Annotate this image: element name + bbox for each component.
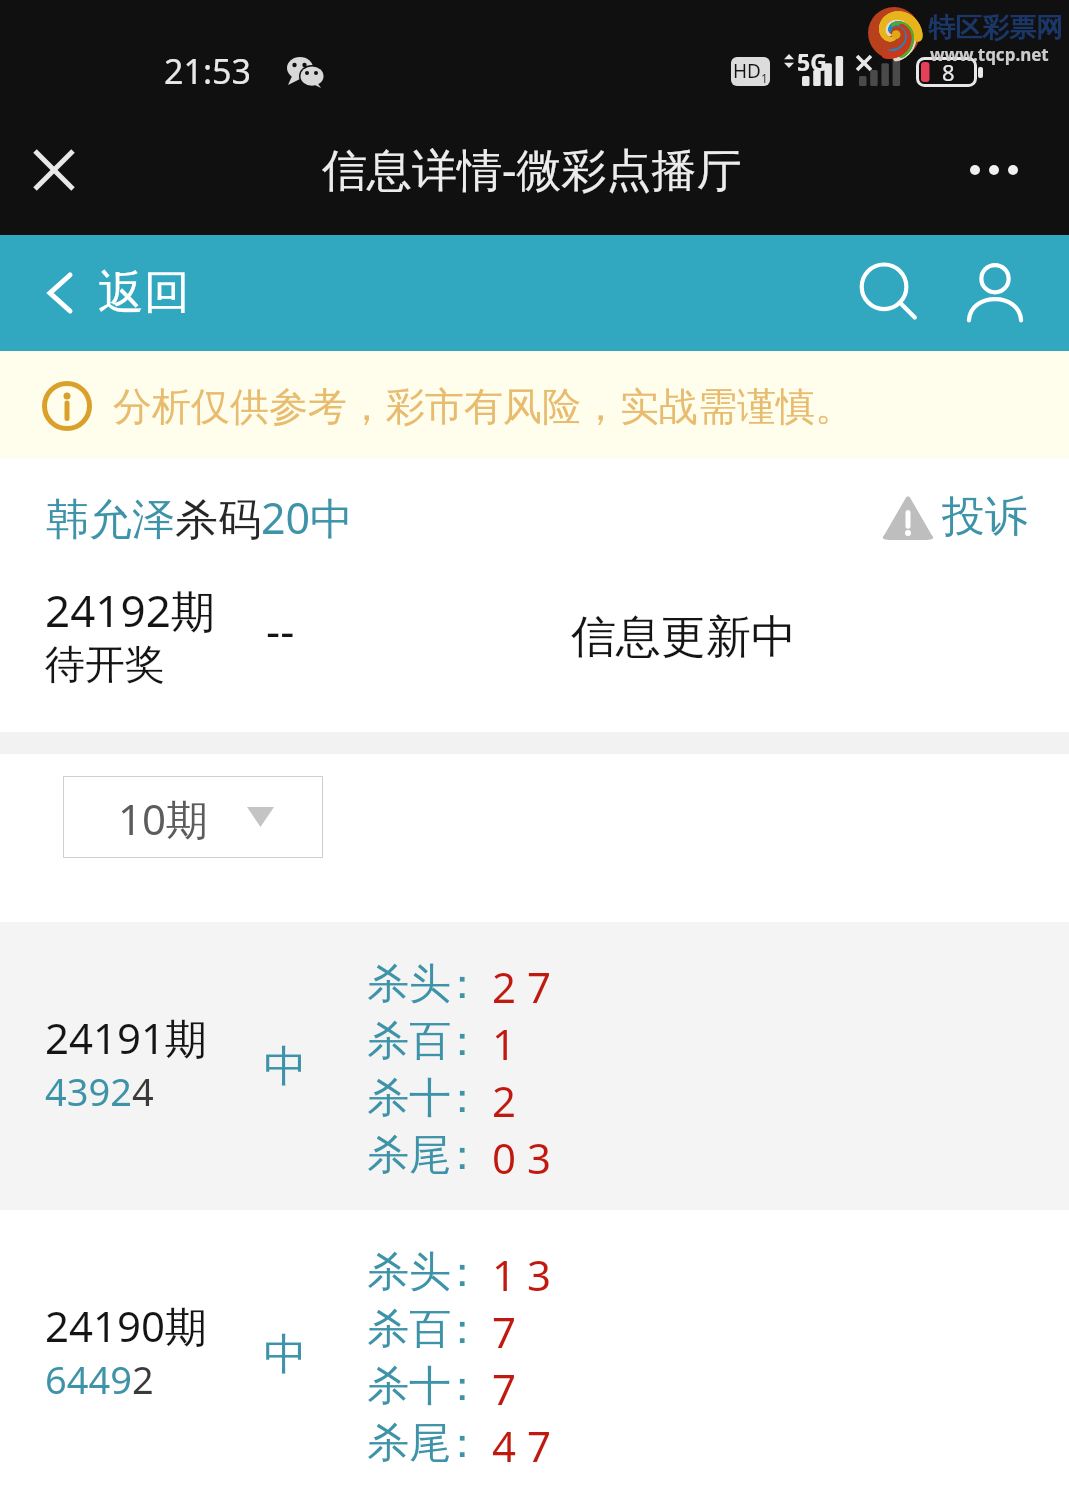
staticText: 投诉 [942, 490, 1028, 544]
staticText: 21:53 [164, 48, 251, 94]
staticText: 10期 [118, 790, 209, 847]
staticText: 43924 [45, 1065, 154, 1117]
staticText: 杀头 [367, 958, 451, 1011]
button[interactable]: Close [10, 126, 98, 214]
button[interactable]: More options [950, 126, 1038, 214]
staticText: 信息更新中 [571, 609, 796, 666]
button[interactable]: 返回 [48, 248, 190, 338]
staticText: 5G [797, 46, 827, 77]
staticText: 8 [942, 57, 955, 87]
staticText: 2 [492, 1072, 517, 1129]
button[interactable]: 投诉 [881, 482, 1028, 552]
staticText: ： [441, 958, 483, 1011]
staticText: 杀十 [367, 1072, 451, 1125]
staticText: 7 [492, 1360, 517, 1417]
staticText: ： [441, 1072, 483, 1125]
staticText: 分析仅供参考，彩市有风险，实战需谨慎。 [113, 382, 854, 431]
button[interactable]: 10期 [63, 776, 323, 858]
staticText: 中 [264, 1040, 307, 1094]
staticText: 杀尾 [367, 1129, 451, 1182]
staticText: ： [441, 1417, 483, 1470]
staticText: 中 [264, 1328, 307, 1382]
button[interactable]: 24190期 [0, 1210, 1069, 1500]
staticText: 7 [492, 1303, 517, 1360]
staticText: www.tqcp.net [930, 43, 1049, 66]
staticText: ： [441, 1015, 483, 1068]
staticText: 4 7 [492, 1417, 551, 1474]
button[interactable]: 24191期 [0, 922, 1069, 1210]
staticText: 2 7 [492, 958, 551, 1015]
staticText: 1 [492, 1015, 517, 1072]
staticText: ： [441, 1129, 483, 1182]
staticText: 杀头 [367, 1246, 451, 1299]
staticText: -- [266, 600, 295, 660]
staticText: ： [441, 1246, 483, 1299]
staticText: 特区彩票网 [928, 11, 1063, 45]
staticText: 杀百 [367, 1303, 451, 1356]
staticText: 24191期 [45, 1009, 208, 1066]
staticText: HD1 [733, 58, 768, 86]
staticText: 1 3 [492, 1246, 551, 1303]
staticText: 64492 [45, 1353, 154, 1405]
staticText: 返回 [98, 264, 190, 322]
staticText: ： [441, 1303, 483, 1356]
staticText: 杀十 [367, 1360, 451, 1413]
staticText: ： [441, 1360, 483, 1413]
staticText: 杀尾 [367, 1417, 451, 1470]
staticText: 韩允泽杀码20中 [46, 488, 354, 547]
staticText: 杀百 [367, 1015, 451, 1068]
staticText: 待开奖 [45, 639, 165, 689]
staticText: 24192期 [45, 580, 215, 640]
button[interactable]: Search [839, 243, 939, 343]
staticText: 0 3 [492, 1129, 551, 1186]
button[interactable]: Profile [945, 242, 1045, 342]
staticText: 24190期 [45, 1297, 208, 1354]
staticText: 信息详情-微彩点播厅 [322, 138, 742, 199]
